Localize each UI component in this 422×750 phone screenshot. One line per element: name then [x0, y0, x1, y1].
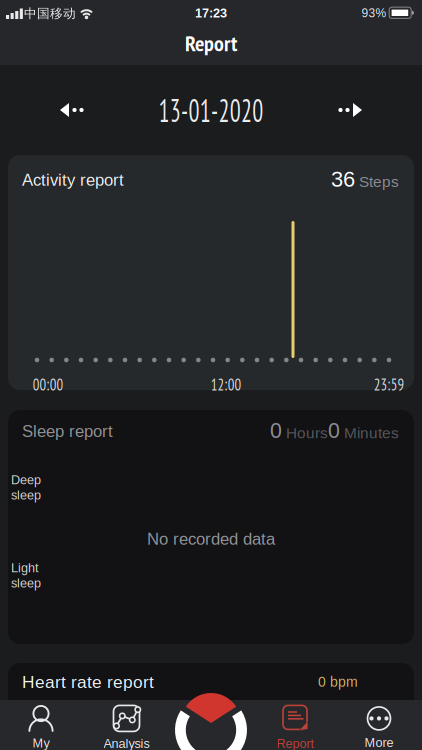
staticText: Hours [282, 424, 328, 441]
staticText: Deep [11, 473, 41, 487]
staticText: 0 [328, 419, 340, 442]
staticText: Minutes [340, 424, 399, 441]
staticText: No recorded data [147, 530, 275, 548]
staticText: My [32, 736, 49, 750]
staticText: Analysis [103, 736, 149, 750]
staticText: More [364, 735, 393, 750]
staticText: Light [11, 561, 39, 575]
staticText: Report [276, 736, 314, 750]
staticText: Steps [355, 173, 399, 190]
staticText: 17:23 [195, 6, 227, 20]
staticText: 00:00 [30, 373, 66, 395]
staticText: 0 bpm [318, 674, 358, 690]
staticText: Heart rate report [22, 672, 154, 692]
staticText: 93% [361, 6, 386, 20]
staticText: 36 [331, 167, 355, 191]
button[interactable]: More [364, 705, 393, 750]
button[interactable]: Analysis [103, 704, 149, 750]
staticText: Report [185, 29, 237, 57]
staticText: 0 [270, 419, 282, 442]
staticText: 13-01-2020 [141, 89, 281, 131]
staticText: sleep [11, 488, 41, 502]
staticText: Activity report [22, 171, 124, 189]
staticText: sleep [11, 576, 41, 590]
button[interactable]: Next day [328, 94, 374, 126]
staticText: Sleep report [22, 422, 113, 440]
button[interactable]: Home [173, 693, 249, 750]
staticText: 23:59 [371, 373, 407, 395]
button[interactable]: My [28, 705, 54, 750]
button[interactable]: Report [276, 704, 314, 750]
staticText: 12:00 [208, 373, 244, 395]
button[interactable]: Previous day [48, 94, 94, 126]
staticText: 中国移动 [24, 5, 76, 21]
